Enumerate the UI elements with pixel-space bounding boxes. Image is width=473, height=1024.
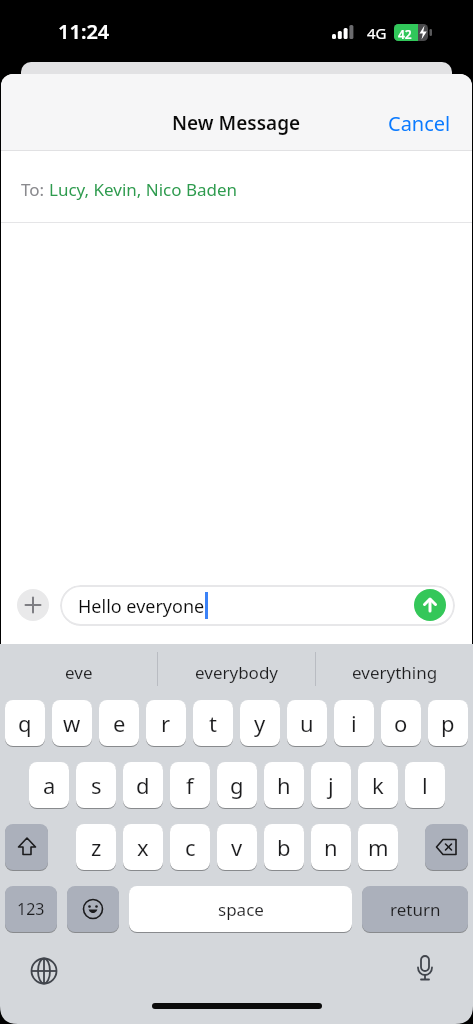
staticText: h [277, 770, 291, 800]
button[interactable]: n [311, 824, 351, 870]
button[interactable] [30, 957, 58, 985]
button[interactable]: space [129, 886, 352, 932]
staticText: Hello everyone [78, 594, 205, 619]
staticText: w [63, 708, 81, 738]
button[interactable]: y [240, 700, 280, 746]
staticText: 123 [17, 898, 45, 920]
staticText: t [209, 708, 217, 738]
staticText: To: [21, 178, 45, 201]
staticText: p [441, 708, 455, 738]
button[interactable]: u [287, 700, 327, 746]
staticText: g [230, 770, 244, 800]
staticText: return [390, 898, 441, 921]
button[interactable]: q [5, 700, 45, 746]
button[interactable]: d [123, 762, 163, 808]
button[interactable] [67, 886, 119, 932]
button[interactable]: f [170, 762, 210, 808]
button[interactable] [17, 589, 49, 621]
button[interactable]: c [170, 824, 210, 870]
staticText: 4G [367, 23, 387, 43]
staticText: y [254, 708, 266, 738]
button[interactable]: w [52, 700, 92, 746]
button[interactable]: To: [1, 154, 472, 225]
button[interactable]: t [193, 700, 233, 746]
button[interactable]: return [362, 886, 468, 932]
button[interactable]: eve [0, 650, 157, 694]
button[interactable] [425, 824, 468, 870]
staticText: Cancel [388, 110, 451, 137]
staticText: j [328, 770, 334, 800]
button[interactable]: m [358, 824, 398, 870]
button[interactable]: a [29, 762, 69, 808]
staticText: z [91, 832, 102, 862]
staticText: s [91, 770, 102, 800]
staticText: space [218, 898, 264, 921]
button[interactable]: k [358, 762, 398, 808]
button[interactable] [411, 954, 439, 982]
staticText: everybody [195, 661, 279, 684]
staticText: everything [352, 661, 438, 684]
staticText: eve [65, 661, 93, 684]
button[interactable]: 123 [5, 886, 57, 932]
staticText: a [43, 770, 56, 800]
button[interactable]: b [264, 824, 304, 870]
button[interactable]: v [217, 824, 257, 870]
staticText: x [137, 832, 149, 862]
staticText: d [136, 770, 150, 800]
button[interactable] [414, 589, 446, 621]
button[interactable]: h [264, 762, 304, 808]
staticText: 11:24 [58, 18, 110, 45]
button[interactable]: i [334, 700, 374, 746]
button[interactable] [5, 824, 48, 870]
staticText: r [161, 708, 171, 738]
button[interactable]: z [76, 824, 116, 870]
staticText: b [277, 832, 291, 862]
staticText: v [231, 832, 243, 862]
staticText: n [324, 832, 338, 862]
staticText: q [18, 708, 32, 738]
button[interactable]: Cancel [388, 110, 451, 137]
staticText: u [300, 708, 314, 738]
staticText: 42 [398, 26, 412, 42]
button[interactable]: s [76, 762, 116, 808]
button[interactable]: everybody [158, 650, 315, 694]
button[interactable]: e [99, 700, 139, 746]
button[interactable]: j [311, 762, 351, 808]
staticText: i [351, 708, 357, 738]
staticText: c [185, 832, 196, 862]
button[interactable]: r [146, 700, 186, 746]
staticText: e [113, 708, 126, 738]
staticText: m [368, 832, 389, 862]
staticText: New Message [172, 110, 301, 136]
staticText: o [394, 708, 408, 738]
button[interactable]: o [381, 700, 421, 746]
staticText: l [422, 770, 428, 800]
button[interactable]: l [405, 762, 445, 808]
button[interactable]: p [428, 700, 468, 746]
staticText: k [372, 770, 384, 800]
button[interactable]: x [123, 824, 163, 870]
staticText: f [186, 770, 194, 800]
staticText: Lucy, Kevin, Nico Baden [49, 178, 238, 201]
button[interactable]: everything [316, 650, 473, 694]
button[interactable]: g [217, 762, 257, 808]
